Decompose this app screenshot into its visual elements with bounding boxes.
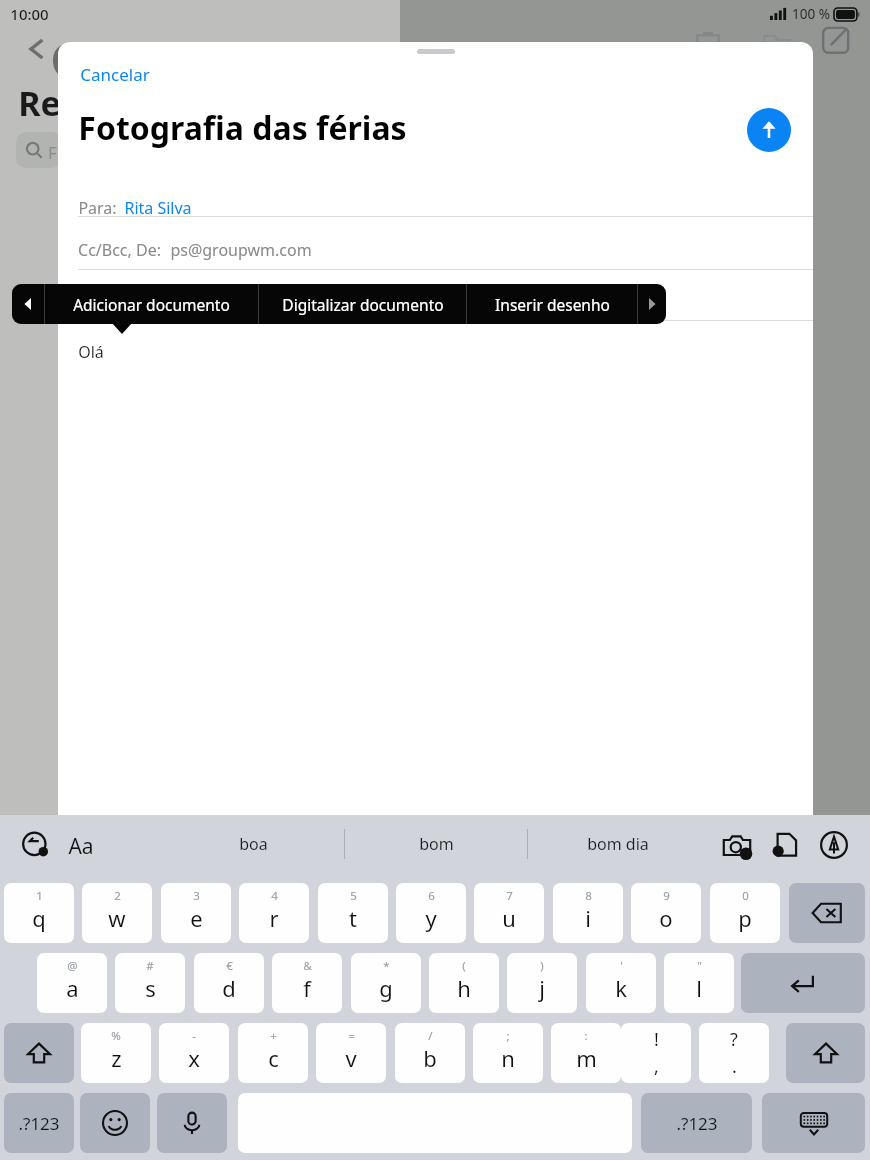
button[interactable]: 8 bbox=[553, 883, 623, 943]
staticText: ! bbox=[654, 1027, 659, 1052]
button[interactable]: 6 bbox=[396, 883, 466, 943]
button[interactable]: ? bbox=[699, 1023, 769, 1083]
staticText: 2 bbox=[114, 888, 121, 904]
staticText: s bbox=[145, 973, 156, 1003]
button[interactable]: @ bbox=[37, 953, 107, 1013]
staticText: Digitalizar documento bbox=[282, 294, 444, 315]
staticText: 5 bbox=[350, 888, 357, 904]
button[interactable]: 3 bbox=[161, 883, 231, 943]
staticText: 9 bbox=[663, 888, 670, 904]
staticText: Cc/Bcc, De: bbox=[78, 239, 161, 261]
button[interactable]: % bbox=[81, 1023, 151, 1083]
button[interactable]: # bbox=[115, 953, 185, 1013]
staticText: # bbox=[146, 958, 154, 974]
staticText: 100 % bbox=[792, 5, 830, 23]
button[interactable]: Emoji bbox=[80, 1093, 150, 1153]
button[interactable]: Digitalizar documento bbox=[259, 284, 466, 324]
staticText: 8 bbox=[585, 888, 592, 904]
button[interactable]: bom bbox=[345, 815, 527, 873]
button[interactable]: 0 bbox=[710, 883, 780, 943]
button[interactable]: 4 bbox=[239, 883, 309, 943]
button[interactable]: + bbox=[238, 1023, 308, 1083]
staticText: Olá bbox=[78, 341, 104, 363]
button[interactable]: Marcação bbox=[820, 831, 848, 859]
staticText: Adicionar documento bbox=[73, 294, 230, 315]
button[interactable]: .?123 bbox=[641, 1093, 752, 1153]
staticText: & bbox=[303, 958, 312, 974]
button[interactable]: ! bbox=[621, 1023, 691, 1083]
button[interactable]: ' bbox=[586, 953, 656, 1013]
button[interactable]: Para: bbox=[58, 182, 813, 234]
staticText: w bbox=[108, 903, 126, 933]
staticText: p bbox=[738, 903, 752, 933]
staticText: h bbox=[457, 973, 471, 1003]
button[interactable]: Seguinte bbox=[638, 284, 666, 324]
button[interactable]: / bbox=[395, 1023, 465, 1083]
staticText: 1 bbox=[36, 888, 43, 904]
staticText: z bbox=[111, 1043, 122, 1073]
button[interactable]: & bbox=[272, 953, 342, 1013]
staticText: f bbox=[303, 973, 311, 1003]
staticText: 7 bbox=[506, 888, 513, 904]
button[interactable]: Shift bbox=[4, 1023, 74, 1083]
staticText: Aa bbox=[68, 832, 94, 861]
staticText: ps@groupwm.com bbox=[170, 239, 312, 261]
button[interactable]: € bbox=[194, 953, 264, 1013]
staticText: 3 bbox=[193, 888, 200, 904]
button[interactable]: Shift bbox=[786, 1023, 865, 1083]
button[interactable]: Apagar bbox=[789, 883, 865, 943]
button[interactable]: ) bbox=[507, 953, 577, 1013]
staticText: .?123 bbox=[676, 1112, 718, 1135]
staticText: v bbox=[345, 1043, 357, 1073]
button[interactable]: : bbox=[551, 1023, 621, 1083]
button[interactable]: * bbox=[351, 953, 421, 1013]
button[interactable]: 5 bbox=[318, 883, 388, 943]
staticText: = bbox=[348, 1028, 355, 1044]
staticText: k bbox=[615, 973, 627, 1003]
staticText: ; bbox=[506, 1028, 510, 1044]
staticText: ' bbox=[620, 958, 623, 974]
button[interactable]: Câmara bbox=[722, 831, 752, 861]
staticText: o bbox=[659, 903, 673, 933]
staticText: t bbox=[349, 903, 357, 933]
button[interactable]: Cancelar bbox=[78, 60, 152, 89]
button[interactable]: " bbox=[664, 953, 734, 1013]
button[interactable]: Anterior bbox=[12, 284, 44, 324]
staticText: @ bbox=[67, 958, 78, 974]
staticText: 6 bbox=[428, 888, 435, 904]
button[interactable]: 2 bbox=[82, 883, 152, 943]
staticText: Fotografia das férias bbox=[78, 106, 407, 150]
staticText: ( bbox=[462, 958, 466, 974]
staticText: 4 bbox=[271, 888, 278, 904]
button[interactable]: Aa bbox=[62, 829, 100, 864]
button[interactable]: Cc/Bcc, De: bbox=[58, 224, 813, 276]
button[interactable]: = bbox=[316, 1023, 386, 1083]
button[interactable]: Adicionar documento bbox=[45, 284, 258, 324]
staticText: Re bbox=[18, 80, 61, 126]
staticText: r bbox=[269, 903, 279, 933]
button[interactable]: Enviar bbox=[747, 108, 791, 152]
button[interactable]: Documento bbox=[772, 831, 800, 859]
button[interactable]: bom dia bbox=[528, 815, 708, 873]
button[interactable]: - bbox=[159, 1023, 229, 1083]
button[interactable]: Ocultar teclado bbox=[762, 1093, 865, 1153]
staticText: 10:00 bbox=[10, 4, 49, 24]
button[interactable]: ; bbox=[473, 1023, 543, 1083]
button[interactable]: 9 bbox=[631, 883, 701, 943]
staticText: d bbox=[222, 973, 236, 1003]
staticText: Cancelar bbox=[80, 63, 150, 86]
button[interactable]: Ditado bbox=[157, 1093, 227, 1153]
button[interactable]: Formatação bbox=[22, 831, 50, 859]
button[interactable]: Enter bbox=[741, 953, 865, 1013]
button[interactable]: 1 bbox=[4, 883, 74, 943]
staticText: " bbox=[697, 958, 702, 974]
button[interactable]: .?123 bbox=[4, 1093, 74, 1153]
button[interactable]: ( bbox=[429, 953, 499, 1013]
staticText: , bbox=[654, 1054, 659, 1079]
button[interactable]: boa bbox=[162, 815, 344, 873]
button[interactable]: 7 bbox=[474, 883, 544, 943]
staticText: + bbox=[270, 1028, 277, 1044]
button[interactable]: Inserir desenho bbox=[467, 284, 637, 324]
staticText: .?123 bbox=[18, 1112, 60, 1135]
